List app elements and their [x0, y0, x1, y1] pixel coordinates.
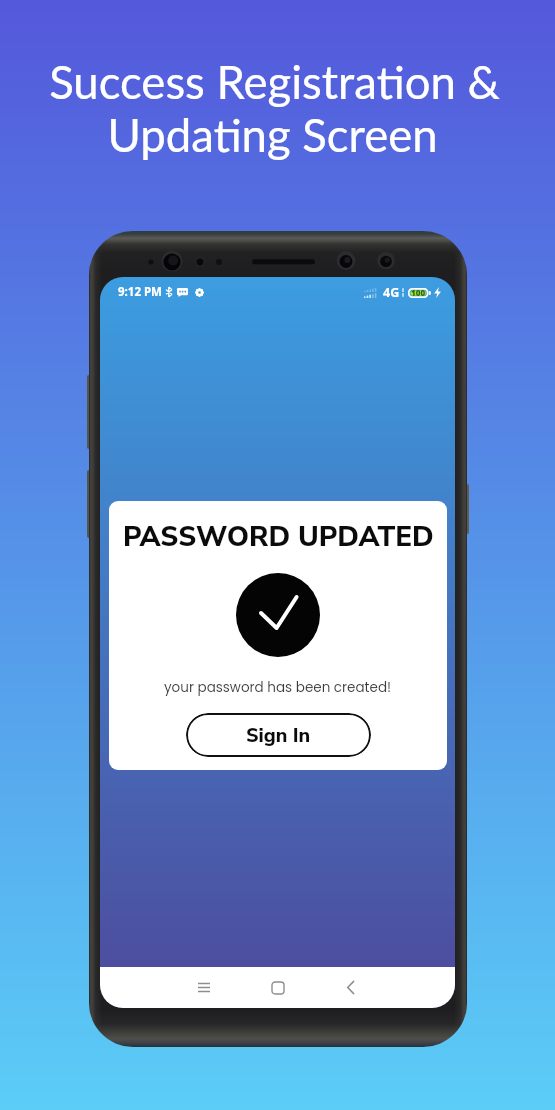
staticText: PASSWORD UPDATED	[123, 518, 434, 556]
staticText: Success Registration &	[49, 54, 500, 109]
staticText: Sign In	[246, 722, 311, 749]
button[interactable]: Back	[328, 967, 372, 1008]
staticText: 100	[411, 287, 426, 298]
button[interactable]: Recent apps	[182, 967, 226, 1008]
staticText: 4G	[383, 284, 400, 301]
button[interactable]: Home	[256, 967, 300, 1008]
staticText: Updating Screen	[107, 107, 438, 162]
staticText: your password has been created!	[164, 678, 392, 697]
button[interactable]: Sign In	[186, 713, 371, 757]
staticText: 9:12 PM	[118, 284, 162, 300]
